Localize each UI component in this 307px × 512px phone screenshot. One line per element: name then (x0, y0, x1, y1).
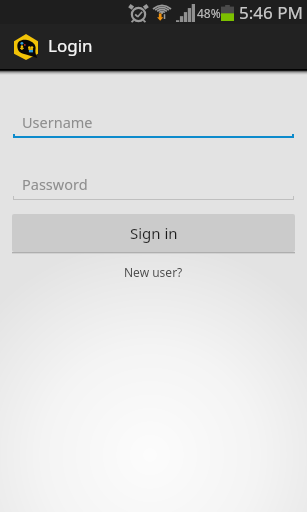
staticText: New user? (124, 264, 183, 280)
staticText: Username (22, 112, 93, 132)
staticText: Password (22, 174, 88, 194)
button[interactable]: New user? (0, 264, 307, 280)
button[interactable]: Sign in (12, 214, 295, 252)
staticText: 48% (197, 5, 221, 21)
staticText: Sign in (130, 223, 178, 243)
staticText: 5:46 PM (239, 1, 303, 24)
staticText: Login (48, 34, 93, 57)
button[interactable]: Username (13, 112, 294, 138)
button[interactable]: Password (13, 174, 294, 200)
